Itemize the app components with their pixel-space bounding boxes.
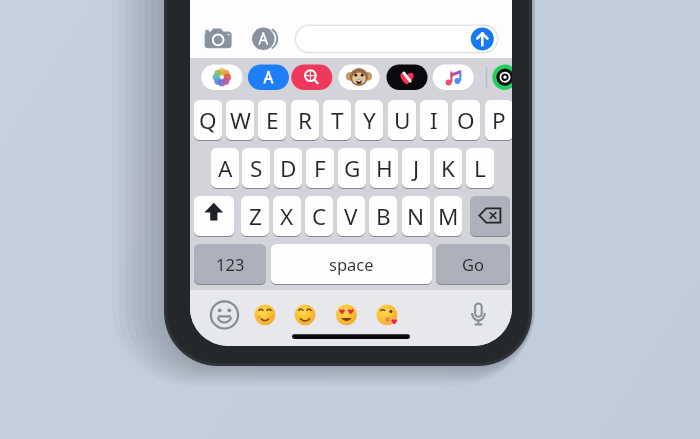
button[interactable]: K: [434, 148, 462, 188]
button[interactable]: X: [273, 196, 301, 236]
staticText: U: [394, 105, 411, 136]
staticText: D: [280, 153, 297, 184]
button[interactable]: E: [258, 100, 286, 140]
staticText: A: [218, 153, 233, 184]
button[interactable]: F: [306, 148, 334, 188]
button[interactable]: [470, 196, 510, 236]
staticText: I: [430, 105, 438, 136]
staticText: K: [441, 153, 455, 184]
button[interactable]: [291, 64, 333, 90]
button[interactable]: B: [369, 196, 397, 236]
staticText: Q: [199, 105, 217, 136]
button[interactable]: R: [291, 100, 319, 140]
button[interactable]: T: [323, 100, 351, 140]
button[interactable]: M: [434, 196, 462, 236]
staticText: H: [376, 153, 393, 184]
button[interactable]: [464, 301, 492, 329]
button[interactable]: U: [388, 100, 416, 140]
button[interactable]: [210, 301, 238, 329]
staticText: O: [457, 105, 475, 136]
button[interactable]: space: [271, 244, 432, 284]
button[interactable]: W: [226, 100, 254, 140]
button[interactable]: J: [402, 148, 430, 188]
button[interactable]: C: [305, 196, 333, 236]
staticText: X: [280, 201, 294, 232]
button[interactable]: S: [242, 148, 270, 188]
staticText: W: [230, 105, 251, 136]
button[interactable]: A: [211, 148, 239, 188]
staticText: B: [376, 201, 391, 232]
button[interactable]: I: [420, 100, 448, 140]
staticText: C: [312, 201, 327, 232]
button[interactable]: 123: [194, 244, 266, 284]
button[interactable]: [338, 64, 380, 90]
button[interactable]: [194, 196, 234, 236]
button[interactable]: Go: [436, 244, 510, 284]
staticText: N: [407, 201, 425, 232]
button[interactable]: P: [485, 100, 512, 140]
staticText: R: [298, 105, 312, 136]
staticText: S: [250, 153, 263, 184]
staticText: G: [344, 153, 361, 184]
button[interactable]: O: [452, 100, 480, 140]
button[interactable]: [201, 64, 243, 90]
button[interactable]: [386, 64, 428, 90]
staticText: space: [329, 253, 374, 275]
button[interactable]: [248, 64, 290, 90]
button[interactable]: G: [338, 148, 366, 188]
staticText: J: [413, 153, 420, 184]
button[interactable]: [200, 28, 236, 52]
staticText: 123: [216, 253, 245, 275]
button[interactable]: V: [337, 196, 365, 236]
staticText: Z: [249, 201, 262, 232]
button[interactable]: Q: [194, 100, 222, 140]
staticText: Y: [363, 105, 376, 136]
button[interactable]: [252, 27, 275, 50]
staticText: P: [492, 105, 506, 136]
staticText: V: [344, 201, 358, 232]
staticText: T: [331, 105, 344, 136]
staticText: E: [266, 105, 279, 136]
staticText: Go: [462, 253, 484, 275]
button[interactable]: D: [274, 148, 302, 188]
button[interactable]: [432, 64, 474, 90]
button[interactable]: [470, 27, 493, 50]
button[interactable]: Y: [355, 100, 383, 140]
button[interactable]: H: [370, 148, 398, 188]
staticText: M: [438, 201, 459, 232]
staticText: L: [474, 153, 486, 184]
button[interactable]: L: [466, 148, 494, 188]
button[interactable]: N: [402, 196, 430, 236]
staticText: F: [314, 153, 326, 184]
button[interactable]: Z: [241, 196, 269, 236]
